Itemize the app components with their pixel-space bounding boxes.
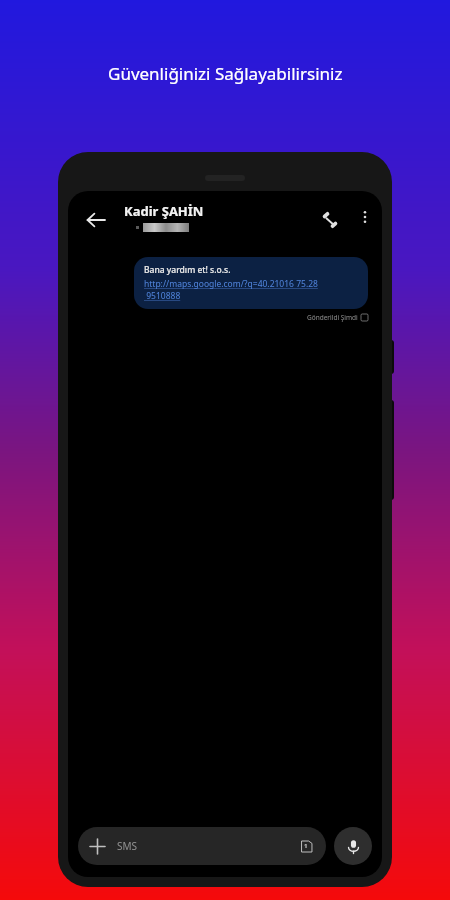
- staticText: 9510888: [144, 290, 181, 302]
- staticText: http://maps.google.com/?q=40.21016 75.28: [144, 278, 318, 290]
- staticText: 1: [304, 842, 308, 850]
- staticText: Gönderildi Şimdi: [307, 313, 358, 322]
- button[interactable]: SMS: [78, 827, 326, 865]
- staticText: Bana yardım et! s.o.s.: [144, 264, 231, 276]
- button[interactable]: Back: [76, 200, 116, 240]
- button[interactable]: Bana yardım et! s.o.s.: [134, 257, 368, 309]
- button[interactable]: Call: [310, 200, 350, 240]
- button[interactable]: Voice message: [334, 827, 372, 865]
- staticText: Güvenliğinizi Sağlayabilirsiniz: [108, 62, 343, 85]
- staticText: Kadir ŞAHİN: [124, 202, 204, 220]
- button[interactable]: More options: [348, 200, 382, 234]
- button[interactable]: SIM 1: [298, 838, 314, 854]
- staticText: SMS: [117, 839, 138, 853]
